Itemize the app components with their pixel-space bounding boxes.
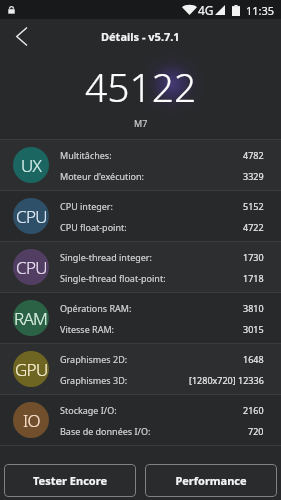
staticText: Moteur d'exécution: [60, 170, 243, 182]
staticText: Stockage I/O: [60, 404, 243, 416]
staticText: Graphismes 3D: [60, 374, 189, 386]
button[interactable]: CPU [0, 242, 281, 292]
staticText: Base de données I/O: [60, 425, 248, 437]
staticText: 1718 [243, 272, 264, 284]
staticText: IO [23, 409, 40, 432]
staticText: 1648 [243, 353, 264, 365]
staticText: 4722 [243, 221, 264, 233]
button[interactable]: RAM [0, 293, 281, 343]
staticText: CPU [16, 256, 47, 279]
staticText: Opérations RAM: [60, 302, 243, 314]
staticText: [1280x720] 12336 [189, 374, 264, 386]
button[interactable]: CPU [0, 191, 281, 241]
staticText: Single-thread integer: [60, 251, 243, 263]
staticText: 45122 [85, 60, 197, 113]
staticText: Tester Encore [33, 473, 107, 488]
staticText: Graphismes 2D: [60, 353, 243, 365]
staticText: Performance [175, 473, 247, 488]
button[interactable]: IO [0, 395, 281, 445]
staticText: 5152 [243, 200, 264, 212]
staticText: CPU [16, 205, 47, 228]
staticText: M7 [134, 117, 148, 129]
button[interactable]: Tester Encore [4, 464, 136, 497]
staticText: CPU integer: [60, 200, 243, 212]
staticText: 3329 [243, 170, 264, 182]
staticText: 1730 [243, 251, 264, 263]
staticText: CPU float-point: [60, 221, 243, 233]
button[interactable]: GPU [0, 344, 281, 394]
staticText: 720 [248, 425, 264, 437]
staticText: RAM [14, 307, 48, 330]
staticText: Vitesse RAM: [60, 323, 243, 335]
staticText: Multitâches: [60, 149, 243, 161]
staticText: Détails - v5.7.1 [101, 29, 180, 44]
staticText: 4782 [243, 149, 264, 161]
staticText: 4G [198, 2, 214, 18]
button[interactable]: UX [0, 140, 281, 190]
staticText: GPU [15, 358, 48, 381]
staticText: 3810 [243, 302, 264, 314]
button[interactable]: Performance [145, 464, 277, 497]
staticText: 2160 [243, 404, 264, 416]
staticText: Single-thread float-point: [60, 272, 243, 284]
staticText: 11:35 [246, 3, 275, 18]
staticText: UX [21, 154, 42, 177]
button[interactable]: Back [4, 19, 38, 53]
staticText: 3015 [243, 323, 264, 335]
